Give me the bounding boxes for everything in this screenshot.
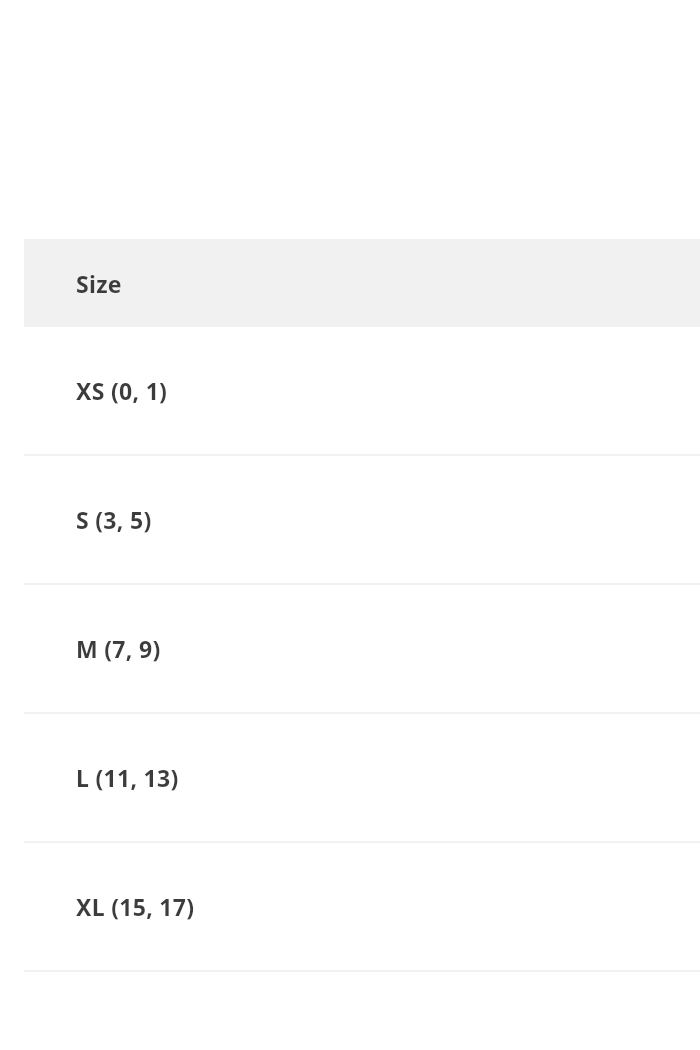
button[interactable]: Size (24, 239, 700, 327)
staticText: XS (0, 1) (76, 375, 168, 406)
staticText: Size (76, 268, 122, 299)
button[interactable]: M (7, 9) (24, 585, 700, 712)
button[interactable]: L (11, 13) (24, 714, 700, 841)
staticText: L (11, 13) (76, 762, 179, 793)
staticText: S (3, 5) (76, 504, 152, 535)
staticText: M (7, 9) (76, 633, 161, 664)
button[interactable]: XS (0, 1) (24, 327, 700, 454)
staticText: XL (15, 17) (76, 891, 195, 922)
button[interactable]: S (3, 5) (24, 456, 700, 583)
button[interactable]: XL (15, 17) (24, 843, 700, 970)
